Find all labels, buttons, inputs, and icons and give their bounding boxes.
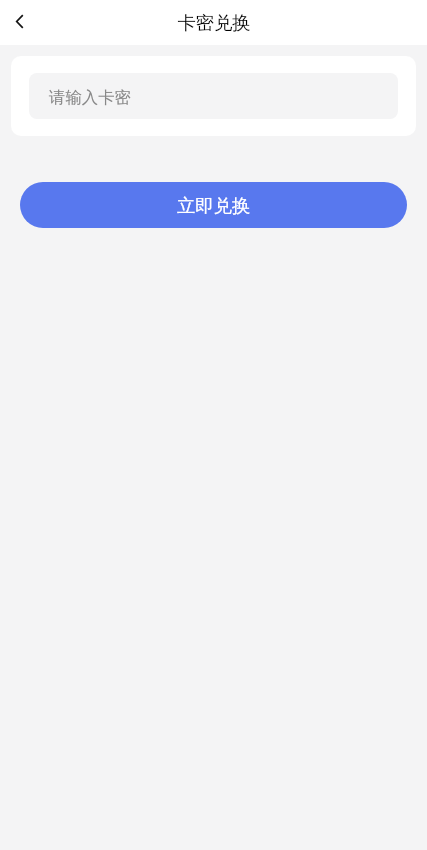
staticText: 请输入卡密	[49, 87, 131, 108]
button[interactable]: 立即兑换	[20, 182, 407, 228]
button[interactable]: Back	[0, 0, 40, 45]
button[interactable]: 请输入卡密	[29, 73, 398, 119]
staticText: 立即兑换	[177, 194, 251, 217]
staticText: 卡密兑换	[177, 11, 251, 34]
